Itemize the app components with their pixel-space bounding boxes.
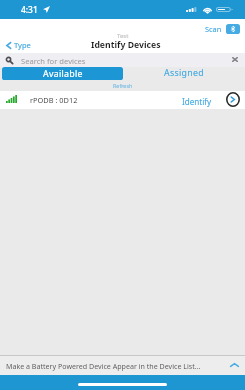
- staticText: Scan: [205, 24, 222, 34]
- staticText: rPODB : 0D12: [30, 95, 78, 105]
- button[interactable]: Device details: [226, 92, 240, 107]
- staticText: Type: [14, 40, 31, 50]
- staticText: Identify Devices: [91, 39, 161, 51]
- other: Bluetooth scan: [226, 24, 240, 34]
- button[interactable]: Available: [2, 67, 123, 80]
- button[interactable]: Refresh: [113, 82, 133, 89]
- button[interactable]: Make a Battery Powered Device Appear in …: [0, 356, 245, 375]
- staticText: 4:31: [21, 4, 38, 15]
- staticText: Refresh: [113, 82, 133, 89]
- staticText: Available: [43, 68, 83, 80]
- other: Clear search: [232, 57, 238, 62]
- staticText: Search for devices: [21, 56, 86, 66]
- staticText: Identify: [182, 96, 212, 107]
- staticText: Make a Battery Powered Device Appear in …: [6, 361, 201, 371]
- button[interactable]: Type: [6, 40, 31, 50]
- button[interactable]: Scan: [205, 24, 240, 34]
- button[interactable]: rPODB : 0D12: [0, 91, 245, 109]
- staticText: Test: [117, 32, 129, 40]
- other: Expand: [230, 363, 239, 367]
- button[interactable]: Assigned: [123, 66, 245, 80]
- button[interactable]: Identify: [182, 96, 212, 107]
- staticText: Assigned: [164, 67, 204, 79]
